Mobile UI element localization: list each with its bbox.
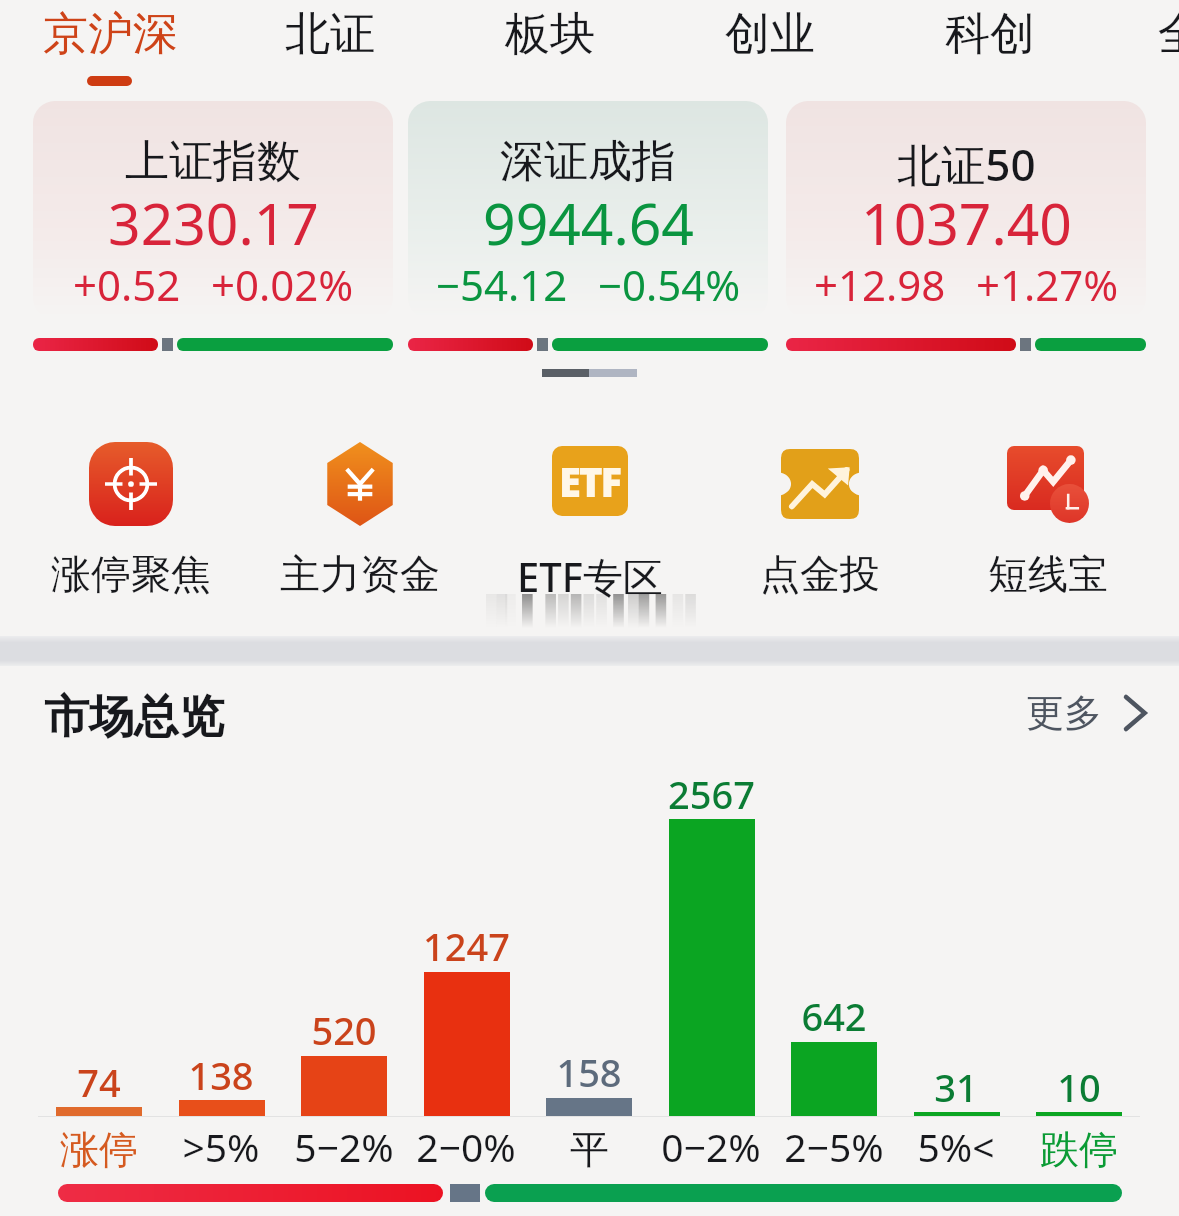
staticText: ETF: [559, 454, 621, 508]
staticText: 2−5%: [784, 1120, 884, 1173]
staticText: 北证50: [897, 134, 1036, 194]
staticText: 点金投: [760, 549, 880, 599]
staticText: 涨停聚焦: [51, 549, 211, 599]
staticText: 市场总览: [44, 689, 224, 746]
staticText: 2567: [668, 768, 755, 820]
other: 涨停聚焦: [89, 442, 173, 526]
staticText: 全: [1158, 6, 1179, 63]
staticText: 5−2%: [294, 1120, 394, 1173]
other: ETF专区: [552, 446, 628, 516]
button[interactable]: [33, 101, 393, 319]
button[interactable]: 点金投: [710, 436, 930, 606]
button[interactable]: 涨停聚焦: [21, 436, 241, 606]
button[interactable]: [0, 0, 220, 92]
staticText: 1247: [423, 920, 510, 972]
button[interactable]: [440, 0, 660, 92]
staticText: 短线宝: [988, 549, 1108, 599]
staticText: 2−0%: [416, 1120, 516, 1173]
staticText: −54.12: [436, 256, 568, 313]
staticText: 跌停: [1040, 1125, 1118, 1174]
button[interactable]: [408, 101, 768, 319]
staticText: 3230.17: [108, 184, 319, 262]
button[interactable]: [1100, 0, 1179, 92]
staticText: 138: [188, 1049, 254, 1101]
staticText: +0.52: [73, 256, 181, 313]
staticText: 北证: [285, 6, 375, 63]
button[interactable]: ETF专区: [480, 436, 700, 606]
button[interactable]: [786, 101, 1146, 319]
staticText: 642: [801, 990, 867, 1042]
staticText: 科创: [945, 6, 1035, 63]
staticText: 520: [311, 1004, 377, 1056]
other: 点金投: [778, 442, 862, 526]
staticText: 0−2%: [661, 1120, 761, 1173]
staticText: 9944.64: [483, 184, 694, 262]
other: 短线宝: [1004, 440, 1092, 528]
staticText: 平: [570, 1125, 609, 1174]
staticText: +1.27%: [976, 256, 1119, 313]
staticText: −0.54%: [598, 256, 741, 313]
staticText: 京沪深: [43, 6, 178, 63]
staticText: 1037.40: [861, 184, 1072, 262]
button[interactable]: [220, 0, 440, 92]
other: 主力资金: [318, 442, 402, 526]
staticText: 上证指数: [125, 134, 301, 189]
staticText: 31: [934, 1061, 978, 1113]
staticText: 创业: [725, 6, 815, 63]
staticText: 涨停: [60, 1125, 138, 1174]
staticText: 主力资金: [280, 549, 440, 599]
button[interactable]: 短线宝: [938, 436, 1158, 606]
button[interactable]: [660, 0, 880, 92]
staticText: 更多: [1026, 689, 1102, 737]
staticText: >5%: [182, 1120, 260, 1173]
staticText: 5%<: [917, 1120, 995, 1173]
staticText: 板块: [505, 6, 595, 63]
staticText: ETF专区: [517, 549, 663, 604]
staticText: +0.02%: [211, 256, 354, 313]
staticText: 深证成指: [500, 134, 676, 189]
staticText: 10: [1057, 1061, 1101, 1113]
button[interactable]: 主力资金: [250, 436, 470, 606]
staticText: 74: [77, 1056, 121, 1108]
button[interactable]: 市场总览: [0, 666, 1179, 760]
staticText: 158: [556, 1046, 622, 1098]
button[interactable]: [880, 0, 1100, 92]
staticText: +12.98: [814, 256, 946, 313]
